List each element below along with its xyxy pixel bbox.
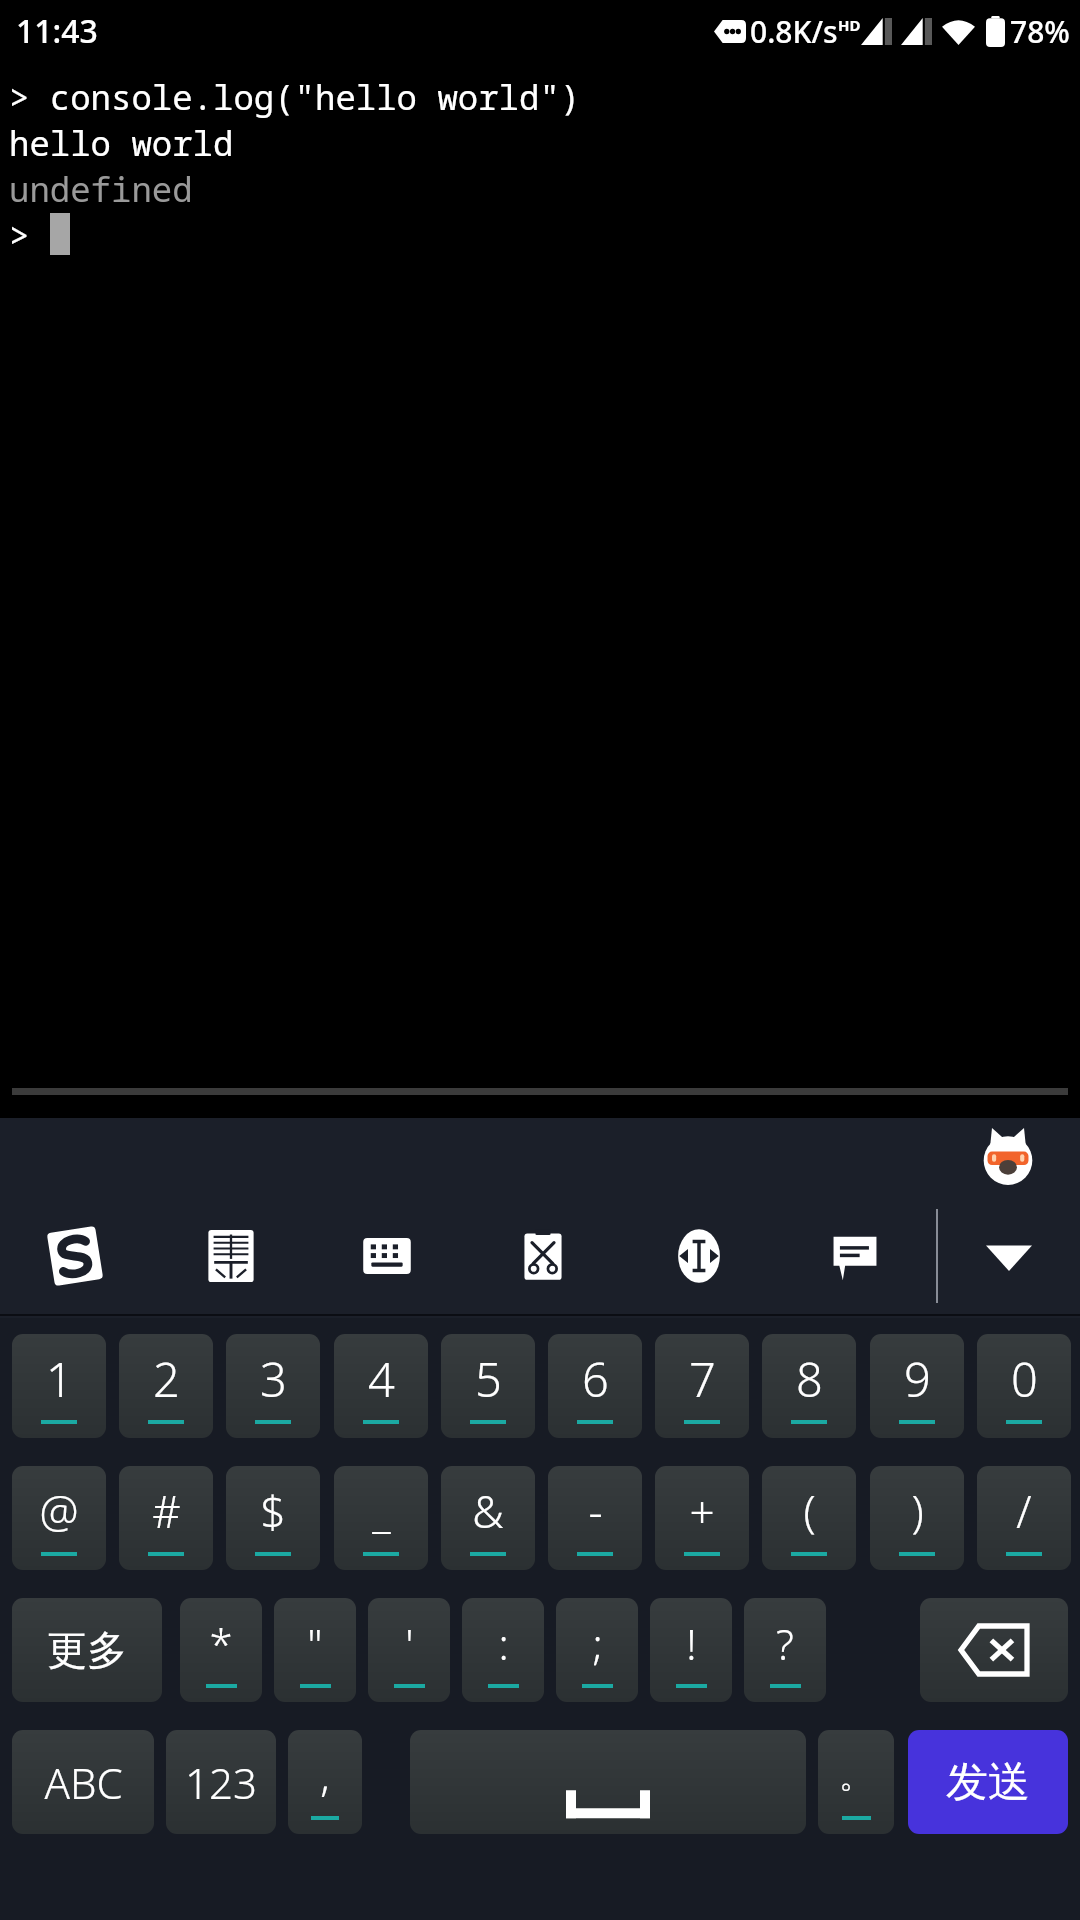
staticText: !	[686, 1615, 697, 1672]
button[interactable]: Backspace	[920, 1598, 1068, 1702]
staticText: 6	[582, 1347, 609, 1411]
staticText: undefined	[9, 166, 193, 212]
staticText: ABC	[44, 1754, 123, 1811]
button[interactable]: $	[226, 1466, 320, 1570]
staticText: _	[372, 1481, 391, 1541]
staticText: 。	[839, 1754, 873, 1797]
staticText: 11:43	[16, 9, 98, 53]
button[interactable]: ,	[288, 1730, 362, 1834]
button[interactable]: 3	[226, 1334, 320, 1438]
button[interactable]: Sogou input	[30, 1211, 120, 1301]
button[interactable]: (	[762, 1466, 856, 1570]
button[interactable]: 发送	[908, 1730, 1068, 1834]
staticText: HD	[838, 15, 861, 35]
staticText: /	[1016, 1481, 1032, 1541]
button[interactable]: /	[977, 1466, 1071, 1570]
staticText: 1	[46, 1347, 73, 1411]
button[interactable]: Traditional Chinese	[186, 1211, 276, 1301]
staticText: hello world	[9, 120, 234, 166]
staticText: 更多	[47, 1625, 127, 1675]
button[interactable]: '	[368, 1598, 450, 1702]
staticText: &	[472, 1481, 504, 1541]
staticText: $	[260, 1481, 286, 1541]
staticText: > console.log("hello world")	[9, 74, 581, 120]
staticText: +	[689, 1481, 715, 1541]
staticText: 8	[796, 1347, 823, 1411]
button[interactable]: +	[655, 1466, 749, 1570]
staticText: ;	[592, 1615, 603, 1672]
staticText: 2	[153, 1347, 180, 1411]
staticText: (	[803, 1481, 816, 1541]
button[interactable]: Assistant	[976, 1126, 1040, 1190]
button[interactable]: 0	[977, 1334, 1071, 1438]
button[interactable]: ABC	[12, 1730, 154, 1834]
staticText: #	[152, 1481, 181, 1541]
button[interactable]: Space	[410, 1730, 806, 1834]
button[interactable]: 4	[334, 1334, 428, 1438]
button[interactable]: :	[462, 1598, 544, 1702]
button[interactable]: Move cursor	[654, 1211, 744, 1301]
staticText: 123	[185, 1754, 257, 1811]
button[interactable]: 5	[441, 1334, 535, 1438]
button[interactable]: Clipboard	[498, 1211, 588, 1301]
button[interactable]: "	[274, 1598, 356, 1702]
staticText: 9	[904, 1347, 931, 1411]
button[interactable]: #	[119, 1466, 213, 1570]
staticText: 发送	[946, 1756, 1030, 1809]
staticText: *	[209, 1615, 233, 1672]
button[interactable]: 1	[12, 1334, 106, 1438]
staticText: 78%	[1010, 11, 1070, 52]
staticText: ,	[320, 1747, 330, 1804]
button[interactable]: 7	[655, 1334, 749, 1438]
button[interactable]: ;	[556, 1598, 638, 1702]
staticText: 0.8K/s	[750, 11, 838, 52]
button[interactable]: _	[334, 1466, 428, 1570]
button[interactable]: 更多	[12, 1598, 162, 1702]
staticText: ?	[776, 1615, 794, 1672]
staticText: -	[588, 1481, 603, 1541]
staticText: >	[9, 212, 30, 256]
button[interactable]: 。	[818, 1730, 894, 1834]
button[interactable]: @	[12, 1466, 106, 1570]
button[interactable]: Quick phrases	[810, 1211, 900, 1301]
button[interactable]: Hide keyboard	[964, 1211, 1054, 1301]
staticText: '	[405, 1615, 414, 1672]
staticText: 3	[260, 1347, 287, 1411]
staticText: @	[39, 1481, 79, 1541]
button[interactable]: ?	[744, 1598, 826, 1702]
staticText: "	[307, 1615, 323, 1672]
button[interactable]: -	[548, 1466, 642, 1570]
staticText: 7	[689, 1347, 716, 1411]
button[interactable]: *	[180, 1598, 262, 1702]
button[interactable]: !	[650, 1598, 732, 1702]
button[interactable]: 2	[119, 1334, 213, 1438]
button[interactable]: Keyboard settings	[342, 1211, 432, 1301]
button[interactable]: 6	[548, 1334, 642, 1438]
button[interactable]: &	[441, 1466, 535, 1570]
button[interactable]: 123	[166, 1730, 276, 1834]
staticText: 0	[1011, 1347, 1038, 1411]
staticText: 4	[368, 1347, 395, 1411]
staticText: :	[498, 1615, 509, 1672]
staticText: )	[911, 1481, 924, 1541]
button[interactable]: 9	[870, 1334, 964, 1438]
button[interactable]: )	[870, 1466, 964, 1570]
staticText: 5	[475, 1347, 502, 1411]
button[interactable]: 8	[762, 1334, 856, 1438]
